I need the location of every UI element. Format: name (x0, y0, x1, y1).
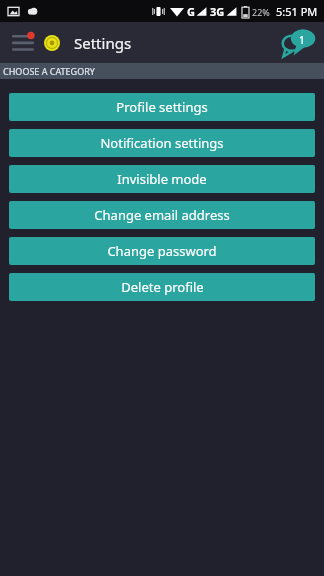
button[interactable]: Delete profile (9, 273, 315, 301)
button[interactable]: Open navigation menu (9, 30, 37, 56)
staticText: Settings (74, 33, 132, 53)
staticText: Invisible mode (117, 170, 207, 188)
staticText: CHOOSE A CATEGORY (3, 65, 95, 77)
staticText: G (187, 4, 195, 19)
staticText: 22% (252, 6, 270, 18)
button[interactable]: Notification settings (9, 129, 315, 157)
staticText: Notification settings (100, 134, 224, 152)
button[interactable]: Profile settings (9, 93, 315, 121)
button[interactable]: Coins (41, 32, 63, 54)
staticText: Profile settings (116, 98, 208, 116)
button[interactable]: Invisible mode (9, 165, 315, 193)
staticText: 5:51 PM (276, 4, 318, 19)
button[interactable]: Change password (9, 237, 315, 265)
button[interactable]: Messages, 1 unread (278, 24, 320, 62)
button[interactable]: Change email address (9, 201, 315, 229)
staticText: Delete profile (121, 278, 204, 296)
staticText: 3G (210, 4, 225, 19)
staticText: 1 (299, 33, 305, 47)
staticText: Change password (107, 242, 217, 260)
staticText: Change email address (94, 206, 230, 224)
